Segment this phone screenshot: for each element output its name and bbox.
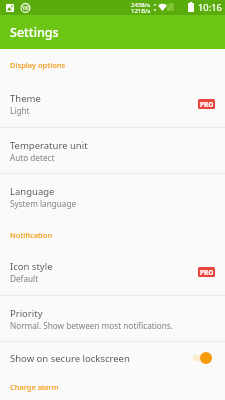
staticText: Icon style bbox=[10, 260, 53, 273]
staticText: Priority bbox=[10, 307, 43, 320]
staticText: Normal. Show between most notifications. bbox=[10, 320, 173, 331]
staticText: 100 bbox=[22, 5, 30, 11]
button[interactable]: Icon style bbox=[0, 249, 225, 295]
staticText: PRO bbox=[200, 268, 214, 277]
staticText: System language bbox=[10, 198, 77, 209]
staticText: Auto detect bbox=[10, 152, 55, 163]
button[interactable]: Language bbox=[0, 174, 225, 220]
staticText: Default bbox=[10, 273, 39, 284]
staticText: Display options bbox=[10, 60, 66, 70]
staticText: Charge alarm bbox=[10, 382, 59, 392]
button[interactable]: Priority bbox=[0, 296, 225, 341]
staticText: Settings bbox=[10, 24, 59, 41]
staticText: Language bbox=[10, 185, 55, 198]
staticText: Temperature unit bbox=[10, 139, 88, 152]
button[interactable]: Temperature unit bbox=[0, 128, 225, 173]
staticText: Notification bbox=[10, 230, 53, 240]
staticText: 2438/s bbox=[131, 1, 150, 9]
staticText: 121B/s bbox=[131, 7, 151, 15]
staticText: Show on secure lockscreen bbox=[10, 352, 193, 365]
staticText: Light bbox=[10, 105, 30, 116]
button[interactable]: Show on secure lockscreen bbox=[0, 342, 225, 374]
staticText: PRO bbox=[200, 100, 214, 109]
button[interactable]: Theme bbox=[0, 81, 225, 127]
staticText: 10:16 bbox=[198, 1, 222, 14]
staticText: Theme bbox=[10, 92, 41, 105]
